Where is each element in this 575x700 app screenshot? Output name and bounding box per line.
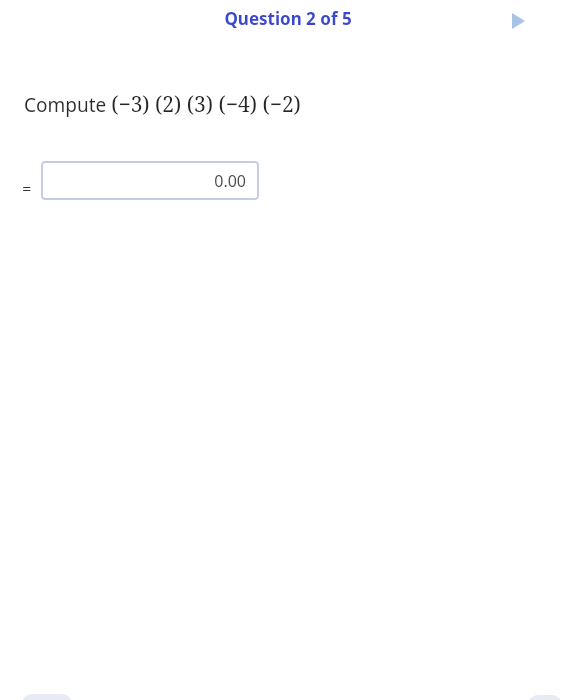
button[interactable]: Next question [503, 8, 533, 34]
staticText: 0.00 [214, 170, 246, 192]
button[interactable]: Question 2 of 5 [218, 6, 358, 31]
button[interactable]: Next [528, 695, 562, 700]
staticText: Question 2 of 5 [224, 7, 352, 30]
button[interactable]: Previous [22, 694, 72, 700]
staticText: = [22, 177, 32, 200]
staticText: Compute (−3) (2) (3) (−4) (−2) [24, 90, 301, 119]
button[interactable]: 0.00 [41, 161, 259, 200]
